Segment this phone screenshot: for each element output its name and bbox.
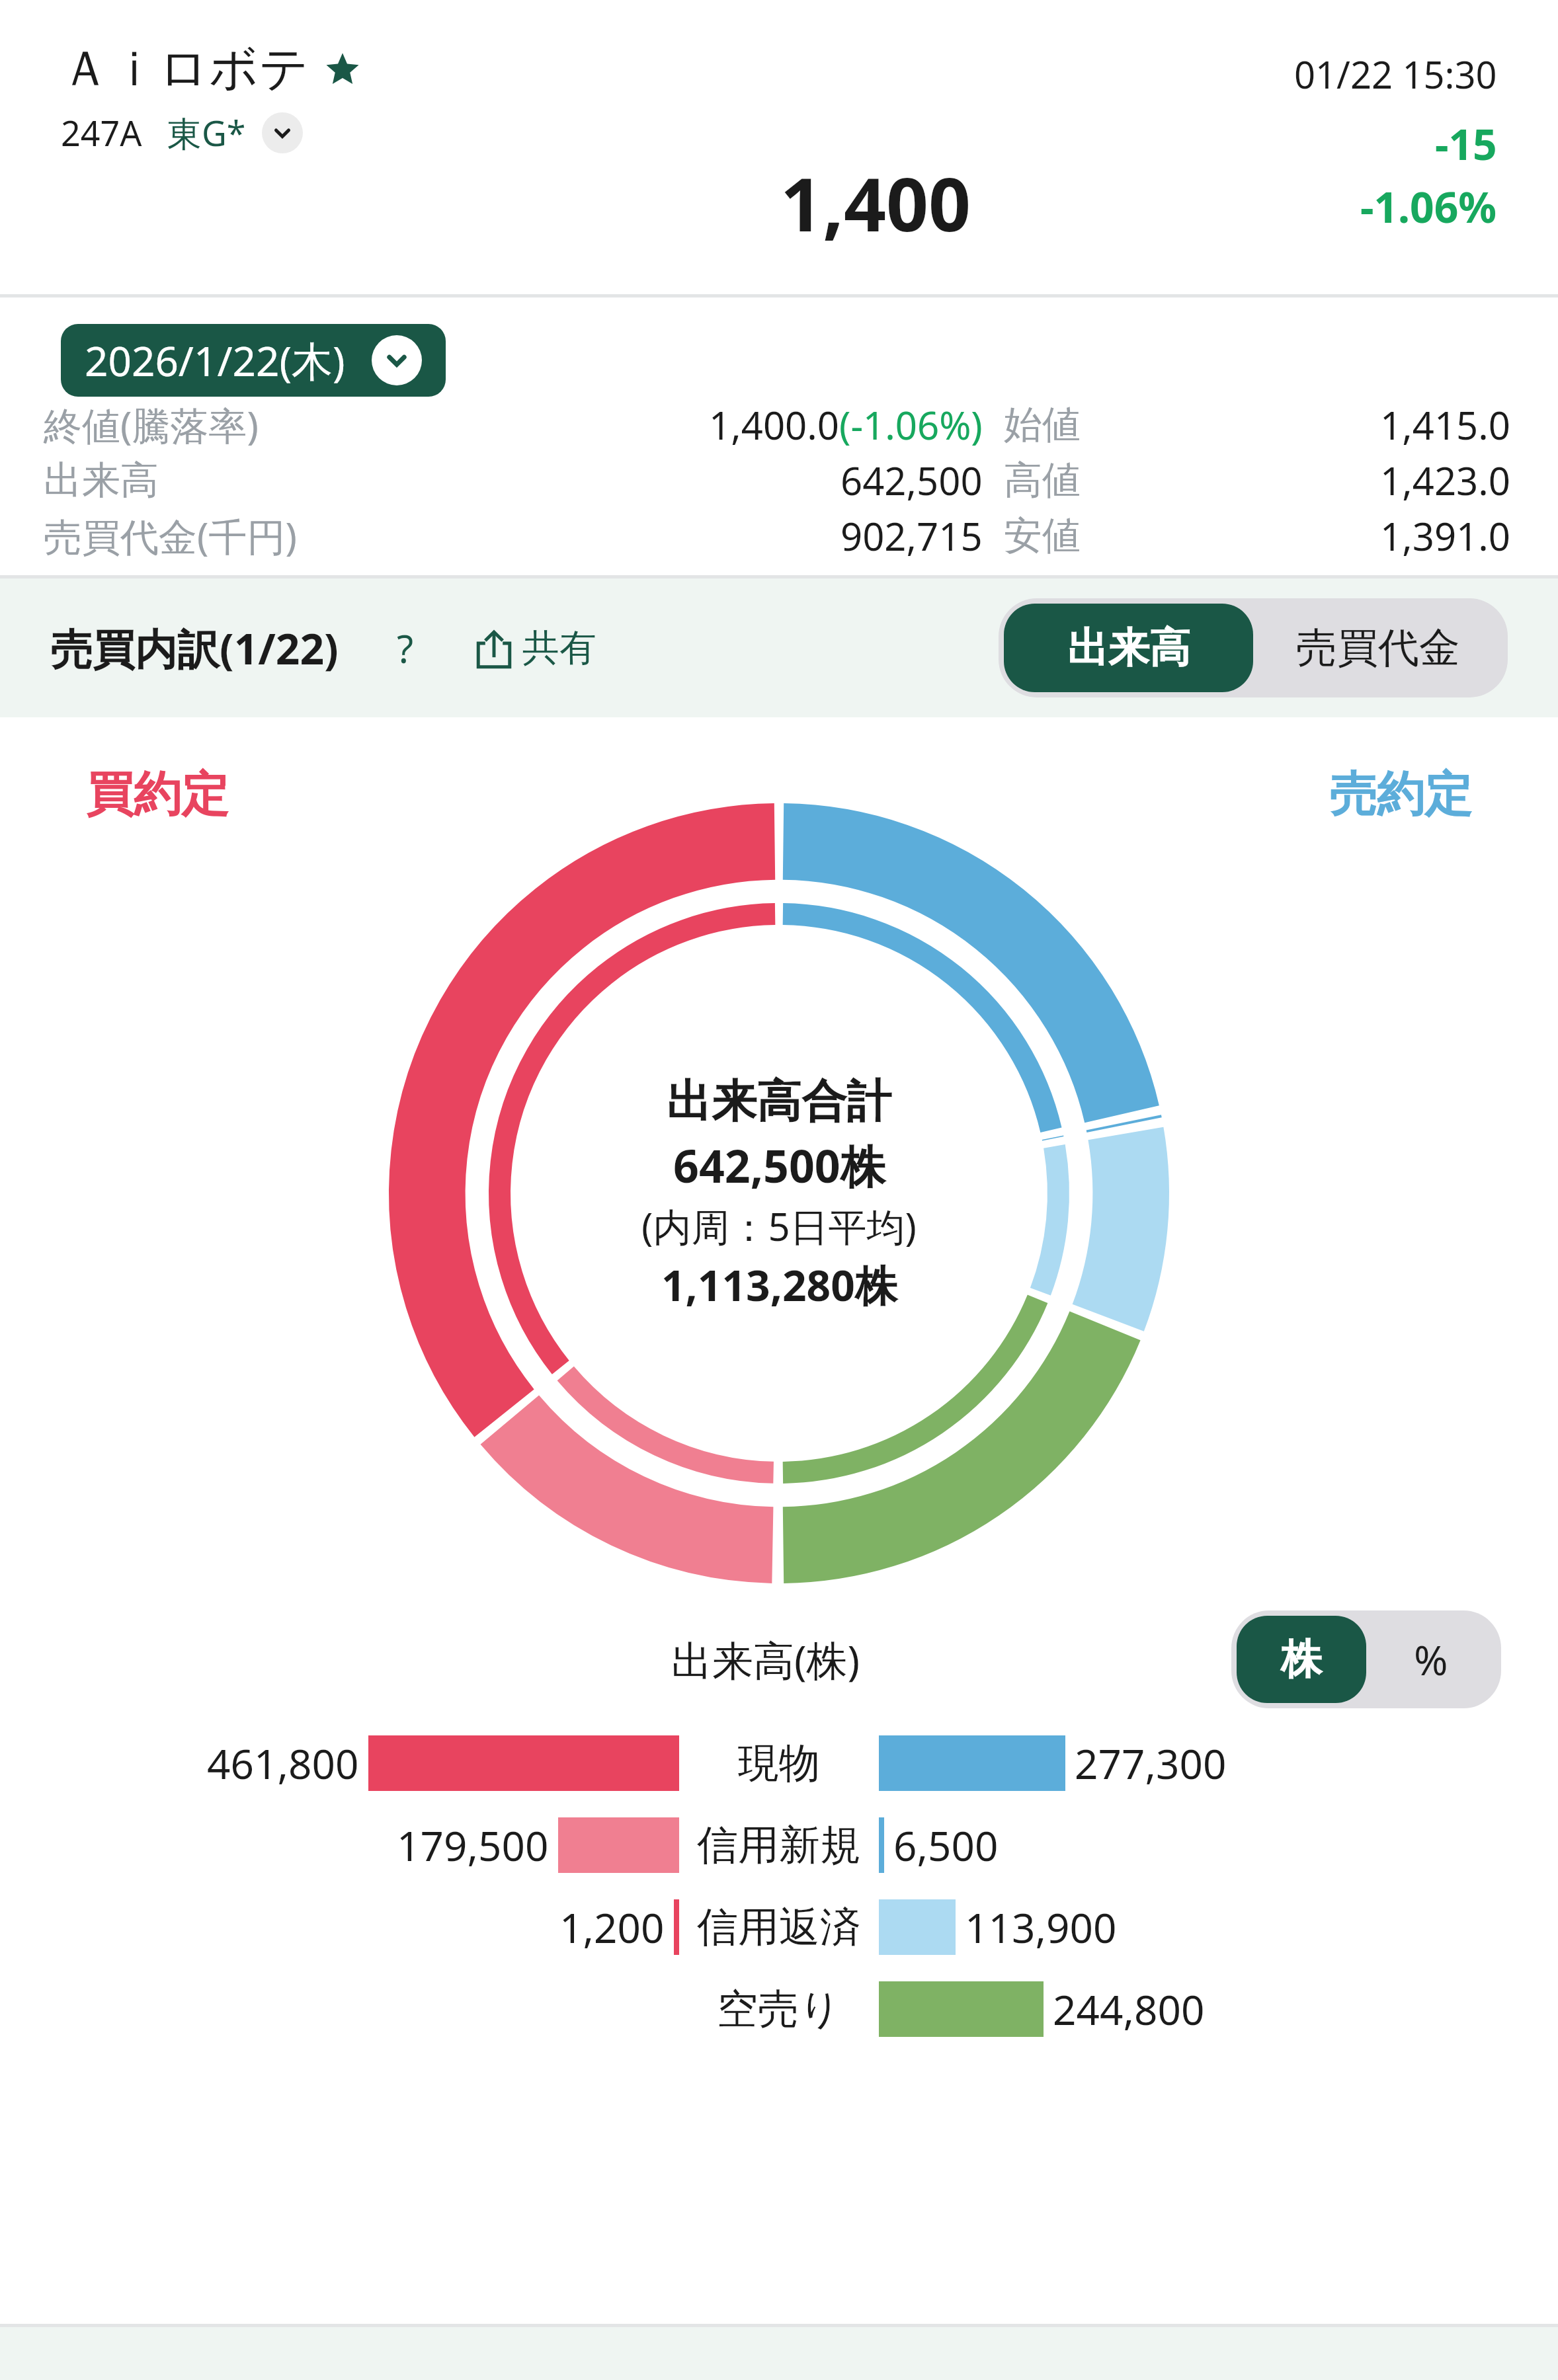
staticText: 売買代金(千円) [44, 510, 467, 562]
button[interactable]: Share [468, 621, 600, 676]
staticText: 247A [61, 109, 142, 156]
button[interactable]: Market detail [262, 112, 303, 153]
staticText: 信用返済 [683, 1901, 875, 1953]
staticText: 902,715 [840, 510, 983, 562]
staticText: 1,423.0 [1116, 454, 1510, 506]
button[interactable]: 出来高 [1004, 604, 1253, 692]
staticText: -1.06% [1360, 178, 1497, 235]
staticText: 出来高(株) [671, 1632, 860, 1688]
staticText: -15 [1435, 115, 1497, 173]
staticText: 1,415.0 [1116, 399, 1510, 451]
staticText: 安値 [1004, 512, 1116, 560]
staticText: 1,113,280株 [661, 1256, 897, 1314]
staticText: (-1.06%) [839, 399, 983, 451]
staticText: 277,300 [1075, 1735, 1227, 1791]
staticText: 113,900 [965, 1899, 1117, 1955]
button[interactable]: 179,500 [0, 1804, 1558, 1886]
staticText: 信用新規 [683, 1819, 875, 1871]
staticText: 株 [1281, 1634, 1322, 1685]
staticText: 179,500 [397, 1817, 549, 1873]
staticText: 1,391.0 [1116, 510, 1510, 562]
staticText: 642,500株 [673, 1134, 885, 1196]
staticText: 1,400.0 [709, 399, 839, 451]
staticText: 終値(騰落率) [44, 399, 467, 451]
button[interactable]: 1,200 [0, 1886, 1558, 1968]
staticText: 共有 [522, 625, 596, 672]
staticText: 1,400 [780, 152, 971, 253]
button[interactable]: 売買代金 [1253, 604, 1502, 692]
button[interactable]: 株 [1237, 1616, 1366, 1703]
staticText: 売買代金 [1296, 622, 1460, 674]
staticText: (内周：5日平均) [641, 1200, 917, 1252]
staticText: 現物 [683, 1737, 875, 1789]
staticText: 1,200 [559, 1899, 665, 1955]
staticText: 出来高 [44, 456, 467, 504]
staticText: 出来高合計 [667, 1074, 891, 1130]
staticText: 買約定 [86, 765, 229, 825]
staticText: 売買内訳(1/22) [50, 619, 339, 677]
button[interactable]: % [1366, 1616, 1496, 1703]
staticText: 6,500 [893, 1817, 999, 1873]
staticText: 始値 [1004, 401, 1116, 449]
staticText: 01/22 15:30 [1294, 49, 1497, 99]
staticText: 244,800 [1053, 1981, 1205, 2037]
staticText: 売約定 [1329, 765, 1472, 825]
button[interactable]: 461,800 [0, 1722, 1558, 1804]
staticText: 高値 [1004, 456, 1116, 504]
button[interactable]: 空売り [0, 1968, 1558, 2050]
staticText: % [1414, 1632, 1448, 1687]
button[interactable]: Help [380, 622, 431, 674]
staticText: 出来高 [1067, 622, 1190, 674]
button[interactable]: 2026/1/22(木) [61, 324, 446, 397]
button[interactable]: Favorite [324, 51, 361, 88]
staticText: 空売り [683, 1983, 875, 2035]
staticText: Ａｉロボテ [61, 38, 309, 100]
staticText: 461,800 [207, 1735, 359, 1791]
staticText: 2026/1/22(木) [85, 333, 345, 389]
staticText: ? [397, 622, 414, 674]
staticText: 東G* [167, 109, 246, 156]
staticText: 642,500 [840, 454, 983, 506]
